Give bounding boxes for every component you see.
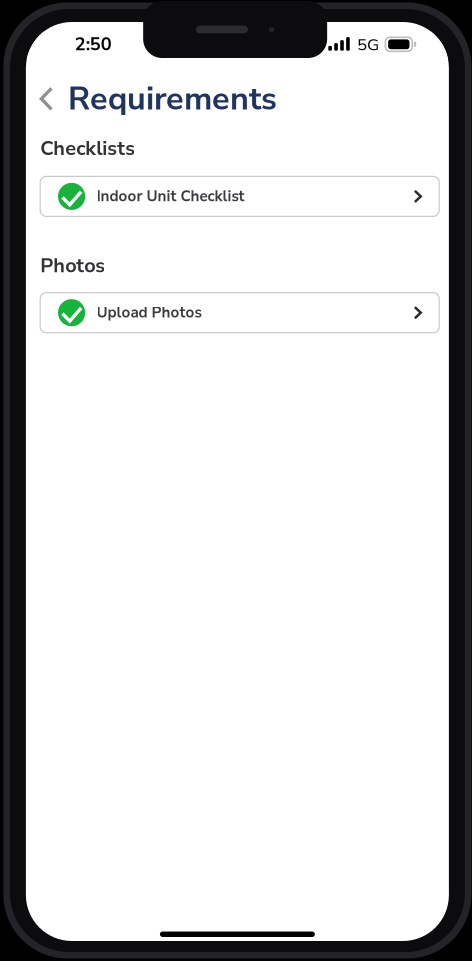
staticText: Requirements	[68, 77, 277, 121]
staticText: Photos	[40, 252, 105, 279]
staticText: Checklists	[40, 135, 135, 162]
button[interactable]: Back	[34, 82, 58, 116]
button[interactable]: Upload Photos	[40, 293, 439, 333]
staticText: 2:50	[75, 32, 112, 57]
button[interactable]: Indoor Unit Checklist	[40, 176, 439, 216]
staticText: Indoor Unit Checklist	[97, 186, 245, 207]
staticText: 5G	[357, 33, 379, 56]
staticText: Upload Photos	[97, 302, 202, 323]
